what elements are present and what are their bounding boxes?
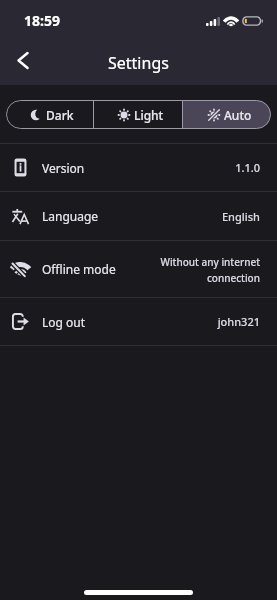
button[interactable]: Auto [183, 100, 271, 129]
staticText: Light [134, 107, 164, 123]
staticText: 18:59 [24, 11, 60, 30]
button[interactable]: Log out [0, 298, 277, 345]
staticText: Offline mode [42, 261, 116, 277]
staticText: Log out [42, 314, 86, 330]
button[interactable]: Light [94, 100, 182, 129]
staticText: Version [42, 160, 85, 176]
staticText: Dark [46, 107, 74, 123]
button[interactable]: Back [0, 41, 44, 85]
staticText: john321 [159, 314, 260, 329]
staticText: Language [42, 208, 99, 224]
button[interactable]: Offline mode [0, 241, 277, 297]
staticText: 1.1.0 [159, 160, 260, 175]
button[interactable]: Language [0, 192, 277, 240]
staticText: Settings [108, 52, 169, 74]
staticText: Without any internet connection [159, 255, 260, 284]
staticText: Auto [224, 107, 252, 123]
staticText: English [159, 209, 260, 224]
button[interactable]: Version [0, 144, 277, 191]
button[interactable]: Dark [6, 100, 93, 129]
